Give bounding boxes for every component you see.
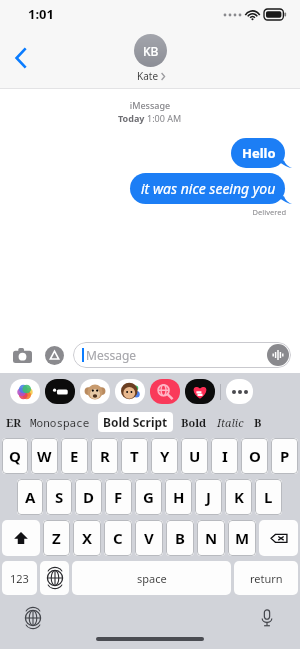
button[interactable]: T [121,438,148,474]
staticText: F [114,487,123,507]
button[interactable]: P [271,438,298,474]
button[interactable]: D [75,479,102,515]
button[interactable]: O [241,438,268,474]
button[interactable]: Message [73,342,291,368]
button[interactable]: S [46,479,72,515]
staticText: KB [143,43,159,59]
staticText: iMessage [0,99,300,111]
button[interactable]: More apps [226,379,253,404]
staticText: D [83,487,94,507]
staticText: return [250,571,283,586]
staticText: O [249,446,261,466]
staticText: 1:01 [28,5,54,23]
button[interactable]: Images [150,379,180,404]
button[interactable]: Back [4,41,38,75]
button[interactable]: Hello [231,138,292,168]
staticText: R [100,446,110,466]
button[interactable]: N [197,520,225,556]
button[interactable]: Fitness [185,379,215,404]
staticText: Y [160,446,170,466]
button[interactable]: App Store [41,342,67,368]
button[interactable]: Y [151,438,178,474]
staticText: E [70,446,79,466]
button[interactable]: Switch keyboard [40,561,69,595]
staticText: K [234,487,244,507]
button[interactable]: L [255,479,282,515]
button[interactable]: J [195,479,222,515]
button[interactable]: Apple Pay [45,379,75,404]
button[interactable]: Audio message [267,344,289,366]
button[interactable]: Photos [10,379,40,404]
button[interactable]: ER [0,415,22,430]
button[interactable]: G [135,479,162,515]
button[interactable]: KB [134,34,167,83]
staticText: Delivered [0,207,286,217]
button[interactable]: W [31,438,58,474]
button[interactable]: return [234,561,298,595]
button[interactable]: Shift [2,520,40,556]
staticText: Italic [217,415,244,430]
staticText: C [113,528,123,548]
staticText: Message [86,347,137,363]
staticText: 1:00 AM [147,112,182,124]
button[interactable]: Memoji [115,379,145,404]
staticText: U [189,446,201,466]
button[interactable]: 123 [2,561,37,595]
button[interactable]: Backspace [259,520,298,556]
staticText: Today [118,112,147,124]
staticText: P [280,446,290,466]
staticText: ER [6,415,22,430]
button[interactable]: F [105,479,132,515]
button[interactable]: U [181,438,208,474]
button[interactable]: Change keyboard [22,607,44,629]
button[interactable]: it was nice seeing you [130,173,292,204]
button[interactable]: Dictate [256,607,278,629]
staticText: 123 [10,571,29,586]
button[interactable]: Italic [217,415,244,430]
staticText: B [175,528,185,548]
staticText: Bold Script [103,414,168,430]
button[interactable]: Bold [181,415,207,430]
staticText: Bold [181,415,207,430]
button[interactable]: Camera [9,342,35,368]
staticText: Hello [242,144,276,162]
button[interactable]: R [91,438,118,474]
staticText: Q [9,446,21,466]
button[interactable]: space [72,561,231,595]
staticText: W [37,446,52,466]
staticText: A [25,487,36,507]
staticText: I [222,446,228,466]
staticText: N [205,528,218,548]
staticText: J [206,487,211,507]
button[interactable]: A [17,479,43,515]
staticText: V [144,528,154,548]
staticText: M [235,528,250,548]
button[interactable]: Z [43,520,70,556]
button[interactable]: M [228,520,256,556]
button[interactable]: C [104,520,132,556]
staticText: Z [52,528,61,548]
button[interactable]: B [254,415,262,430]
button[interactable]: X [73,520,101,556]
button[interactable]: Q [2,438,28,474]
staticText: space [137,571,167,586]
button[interactable]: Bold Script [98,412,173,432]
staticText: G [143,487,154,507]
button[interactable]: E [61,438,88,474]
button[interactable]: Monospace [30,415,90,430]
button[interactable]: K [225,479,252,515]
button[interactable]: B [166,520,194,556]
staticText: it was nice seeing you [141,179,276,198]
staticText: Kate [137,69,159,83]
button[interactable]: V [135,520,163,556]
staticText: T [130,446,139,466]
staticText: X [82,528,93,548]
staticText: S [55,487,64,507]
staticText: H [173,487,185,507]
staticText: L [264,487,273,507]
button[interactable]: Memoji monkey [80,379,110,404]
staticText: Monospace [30,415,90,430]
staticText: B [254,415,262,430]
button[interactable]: I [211,438,238,474]
button[interactable]: H [165,479,192,515]
